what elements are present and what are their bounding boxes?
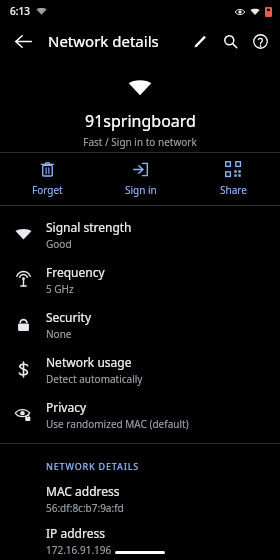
button[interactable]: Search	[215, 26, 245, 56]
staticText: 56:df:8c:b7:9a:fd	[46, 501, 124, 515]
staticText: Good	[46, 237, 72, 251]
staticText: Frequency	[46, 264, 105, 280]
staticText: MAC address	[46, 483, 120, 499]
staticText: Detect automatically	[46, 372, 143, 386]
staticText: Network usage	[46, 354, 132, 370]
button[interactable]: Frequency	[0, 257, 280, 302]
button[interactable]: Help	[245, 26, 275, 56]
button[interactable]: Edit	[185, 26, 215, 56]
button[interactable]: Signal strength	[0, 212, 280, 257]
staticText: Sign in	[125, 183, 157, 197]
staticText: Network details	[48, 31, 159, 51]
button[interactable]: Network usage	[0, 347, 280, 392]
staticText: Share	[220, 183, 247, 197]
button[interactable]: Forget	[0, 153, 94, 205]
staticText: 5 GHz	[46, 282, 74, 296]
staticText: 172.16.91.196	[46, 543, 112, 557]
button[interactable]: Sign in	[94, 153, 187, 205]
staticText: Forget	[32, 183, 63, 197]
button[interactable]: IP address	[0, 522, 280, 560]
button[interactable]: Privacy	[0, 392, 280, 437]
staticText: 91springboard	[85, 110, 196, 132]
button[interactable]: Security	[0, 302, 280, 347]
staticText: IP address	[46, 525, 105, 541]
button[interactable]: MAC address	[0, 476, 280, 522]
staticText: Security	[46, 309, 92, 325]
staticText: NETWORK DETAILS	[46, 460, 140, 472]
button[interactable]: Share	[187, 153, 280, 205]
staticText: None	[46, 327, 72, 341]
staticText: Signal strength	[46, 219, 132, 235]
button[interactable]: Back	[6, 24, 40, 58]
staticText: Fast / Sign in to network	[83, 135, 197, 149]
staticText: Use randomized MAC (default)	[46, 417, 189, 431]
staticText: 6:13	[10, 4, 30, 18]
staticText: Privacy	[46, 399, 87, 415]
